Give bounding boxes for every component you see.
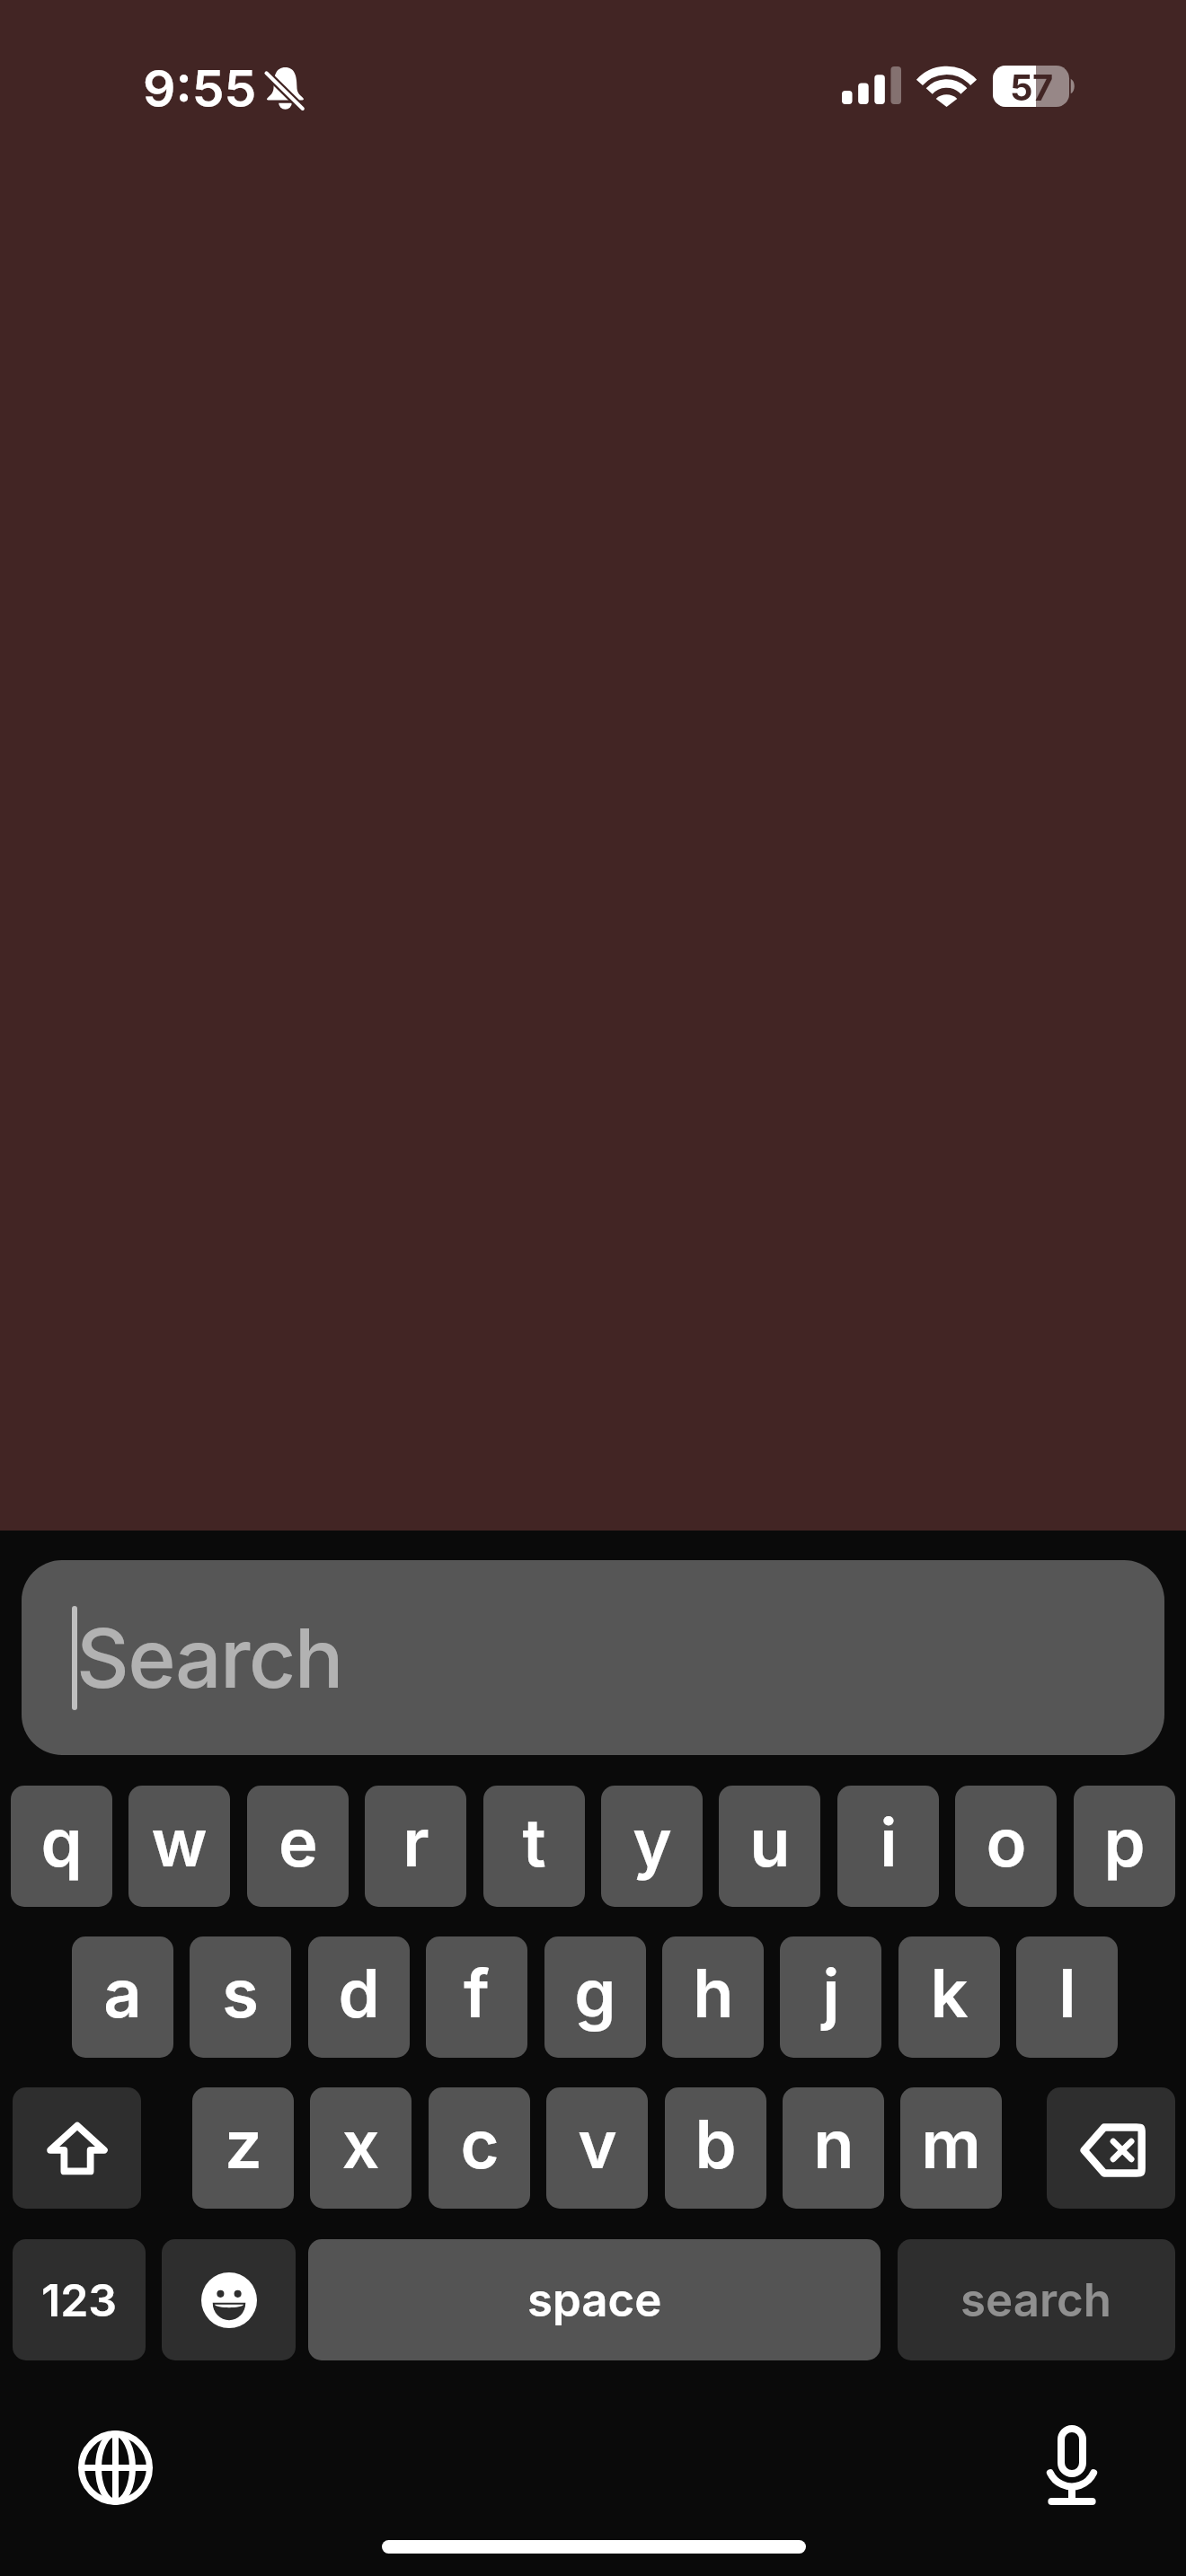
staticText: j [822,1953,840,2033]
button[interactable]: Backspace [1047,2087,1175,2209]
button[interactable]: m [900,2087,1002,2209]
staticText: a [103,1953,142,2033]
button[interactable]: Next keyboard [78,2430,153,2505]
staticText: w [151,1802,208,1883]
staticText: u [749,1802,791,1883]
staticText: 9:55 [143,57,257,119]
button[interactable]: w [128,1786,230,1907]
button[interactable]: Shift [13,2087,141,2209]
button[interactable]: i [837,1786,939,1907]
staticText: e [279,1802,318,1883]
staticText: f [464,1953,490,2033]
staticText: l [1058,1953,1076,2033]
button[interactable]: 123 [13,2239,146,2360]
staticText: z [225,2104,262,2184]
staticText: c [460,2104,500,2184]
button[interactable]: t [483,1786,585,1907]
button[interactable]: Search [22,1560,1164,1755]
button[interactable]: q [11,1786,112,1907]
button[interactable]: h [662,1936,764,2058]
button[interactable]: y [601,1786,703,1907]
button[interactable]: space [308,2239,881,2360]
staticText: x [341,2104,380,2184]
staticText: s [222,1953,259,2033]
button[interactable]: k [898,1936,1000,2058]
button[interactable]: n [783,2087,884,2209]
staticText: space [527,2272,662,2328]
button[interactable]: r [365,1786,466,1907]
button[interactable]: x [310,2087,412,2209]
button[interactable]: l [1016,1936,1118,2058]
staticText: b [695,2104,737,2184]
button[interactable]: z [192,2087,294,2209]
staticText: q [40,1802,83,1883]
button[interactable]: b [665,2087,766,2209]
button[interactable]: p [1074,1786,1175,1907]
staticText: h [693,1953,734,2033]
staticText: i [880,1802,898,1883]
button[interactable]: e [247,1786,349,1907]
staticText: g [574,1953,616,2033]
staticText: k [930,1953,969,2033]
staticText: r [403,1802,429,1883]
button[interactable]: Dictation [1044,2425,1100,2505]
staticText: 123 [41,2273,118,2327]
staticText: n [813,2104,854,2184]
staticText: d [338,1953,380,2033]
staticText: m [921,2104,981,2184]
button[interactable]: f [426,1936,527,2058]
staticText: p [1103,1802,1146,1883]
button[interactable]: search [898,2239,1175,2360]
button[interactable]: d [308,1936,410,2058]
staticText: t [522,1802,546,1883]
button[interactable]: Emoji [162,2239,296,2360]
staticText: 57 [1010,66,1053,107]
button[interactable]: c [429,2087,530,2209]
staticText: v [578,2104,617,2184]
button[interactable]: s [190,1936,291,2058]
button[interactable]: a [72,1936,173,2058]
staticText: search [960,2272,1112,2328]
staticText: o [986,1802,1027,1883]
staticText: y [633,1802,672,1883]
button[interactable]: g [544,1936,646,2058]
button[interactable]: v [546,2087,648,2209]
button[interactable]: j [780,1936,881,2058]
button[interactable]: u [719,1786,820,1907]
button[interactable]: o [955,1786,1057,1907]
staticText: Search [76,1609,342,1707]
